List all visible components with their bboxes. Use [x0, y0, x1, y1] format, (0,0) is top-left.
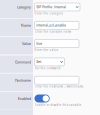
- staticText: Set the command: [34, 67, 60, 70]
- staticText: Hostname: [15, 78, 31, 82]
- staticText: Command: [15, 60, 31, 64]
- staticText: Enable or disable this variable.: [34, 103, 82, 107]
- staticText: Enabled: [18, 97, 31, 101]
- staticText: Category: [17, 5, 31, 9]
- staticText: Name: [21, 24, 31, 28]
- staticText: Enter the variable name: [34, 30, 71, 33]
- staticText: internal_ssl_enable: [36, 23, 66, 27]
- staticText: Enter the value: [34, 48, 58, 52]
- staticText: SIP Profile: Internal: [36, 5, 66, 9]
- staticText: true: [36, 42, 42, 46]
- staticText: Enter the category: [34, 12, 63, 15]
- staticText: Set: [36, 60, 41, 64]
- staticText: Value: [22, 42, 31, 46]
- staticText: Enter the hostname / switchname.: [34, 85, 84, 88]
